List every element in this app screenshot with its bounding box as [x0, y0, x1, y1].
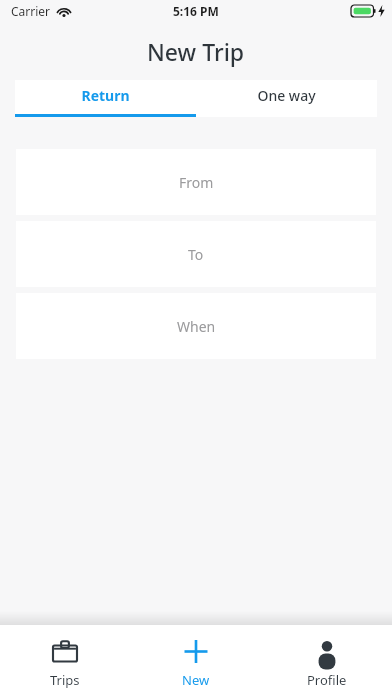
button[interactable]: Profile: [261, 625, 392, 696]
button[interactable]: To: [16, 221, 376, 287]
button[interactable]: Return: [15, 80, 196, 117]
button[interactable]: One way: [196, 80, 377, 117]
button[interactable]: Trips: [0, 625, 130, 696]
staticText: Profile: [307, 671, 347, 689]
staticText: Trips: [50, 671, 80, 689]
staticText: When: [177, 317, 216, 336]
staticText: To: [188, 245, 204, 264]
other: New: [181, 639, 211, 664]
staticText: New: [182, 671, 210, 689]
staticText: From: [179, 173, 214, 192]
staticText: One way: [257, 86, 316, 105]
button[interactable]: New: [130, 625, 261, 696]
button[interactable]: From: [16, 149, 376, 215]
other: Trips: [50, 639, 80, 664]
staticText: Return: [81, 86, 130, 105]
staticText: Carrier: [11, 3, 51, 19]
staticText: New Trip: [147, 36, 245, 67]
staticText: 5:16 PM: [173, 3, 219, 19]
other: Profile: [312, 639, 342, 664]
button[interactable]: When: [16, 293, 376, 359]
